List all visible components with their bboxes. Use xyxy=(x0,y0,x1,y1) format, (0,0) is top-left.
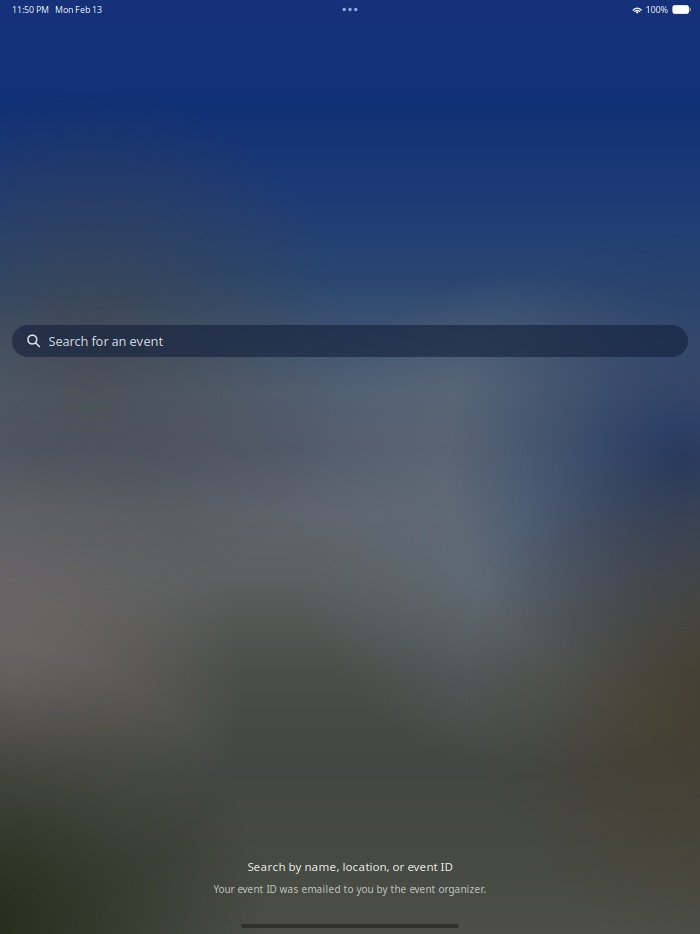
button[interactable]: Search for an event xyxy=(12,325,688,357)
staticText: Search for an event xyxy=(48,332,163,350)
staticText: 100% xyxy=(645,3,668,16)
staticText: Search by name, location, or event ID xyxy=(247,859,452,874)
staticText: Your event ID was emailed to you by the … xyxy=(213,882,486,896)
staticText: Mon Feb 13 xyxy=(55,3,102,15)
staticText: 11:50 PM xyxy=(12,3,49,15)
